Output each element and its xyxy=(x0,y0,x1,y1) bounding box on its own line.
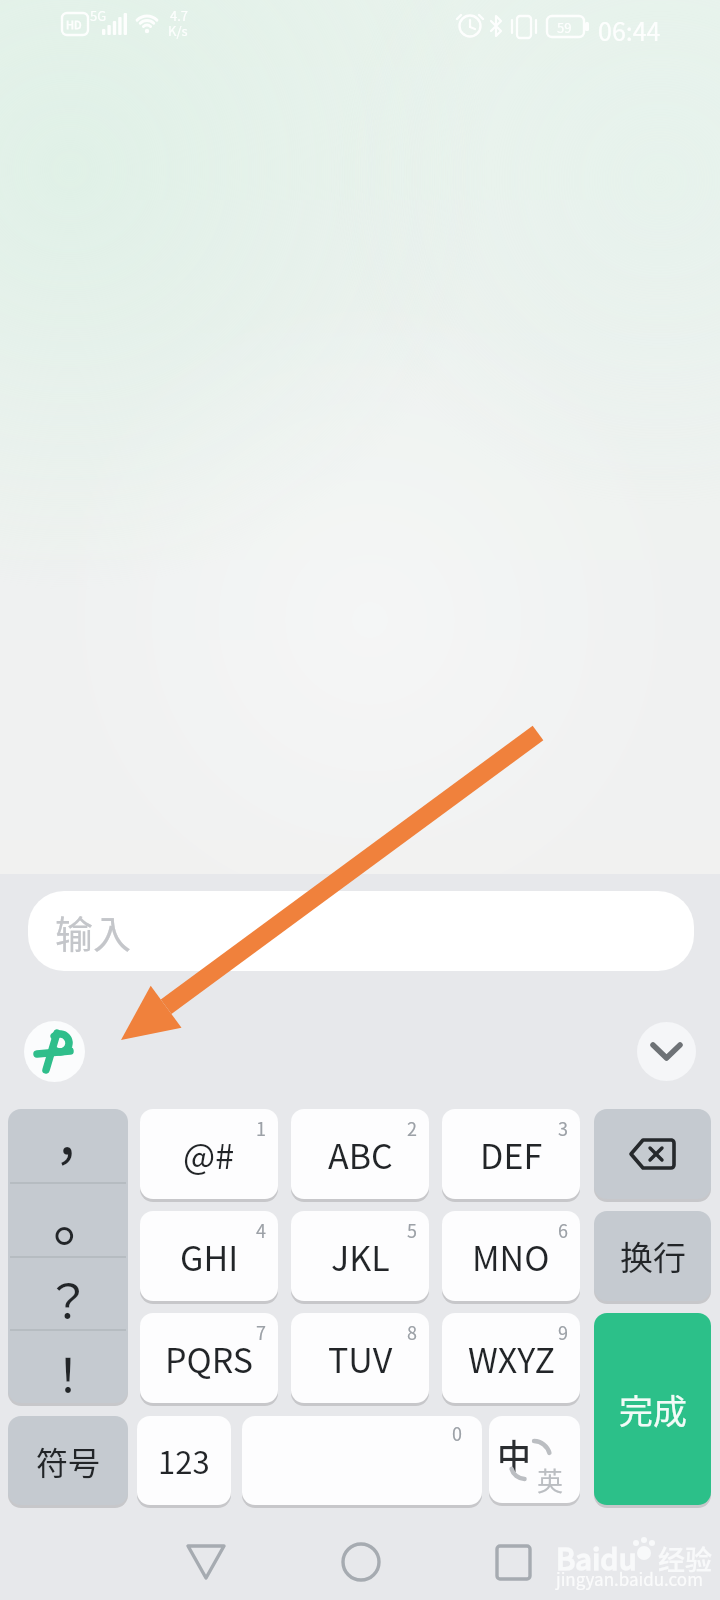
staticText: 123 xyxy=(158,1438,210,1483)
staticText: 英 xyxy=(537,1461,564,1499)
staticText: DEF xyxy=(480,1130,543,1179)
staticText: 5 xyxy=(407,1217,417,1243)
staticText: 3 xyxy=(558,1115,568,1141)
staticText: 06:44 xyxy=(598,12,661,48)
staticText: 1 xyxy=(256,1115,266,1141)
staticText: 4.7 xyxy=(170,6,189,25)
staticText: 8 xyxy=(407,1319,417,1345)
staticText: ？ xyxy=(45,1265,91,1332)
staticText: 换行 xyxy=(620,1232,686,1280)
staticText: JKL xyxy=(331,1232,390,1281)
staticText: GHI xyxy=(180,1232,239,1281)
staticText: ， xyxy=(54,1097,108,1171)
staticText: 4 xyxy=(256,1217,266,1243)
staticText: jingyan.baidu.com xyxy=(556,1566,703,1591)
staticText: WXYZ xyxy=(468,1334,555,1383)
staticText: 2 xyxy=(407,1115,417,1141)
staticText: 9 xyxy=(558,1319,568,1345)
staticText: K/s xyxy=(168,21,188,40)
staticText: 6 xyxy=(558,1217,568,1243)
staticText: TUV xyxy=(328,1334,393,1383)
staticText: ABC xyxy=(328,1130,393,1179)
staticText: MNO xyxy=(472,1232,550,1281)
staticText: 。 xyxy=(53,1174,112,1248)
staticText: 59 xyxy=(557,18,572,37)
staticText: 7 xyxy=(256,1319,266,1345)
staticText: ！ xyxy=(45,1339,91,1406)
staticText: HD xyxy=(66,16,82,32)
staticText: @# xyxy=(183,1130,235,1179)
staticText: 输入 xyxy=(55,904,132,959)
staticText: 5G xyxy=(90,6,107,25)
staticText: 完成 xyxy=(619,1385,687,1434)
staticText: 经验 xyxy=(658,1539,712,1578)
staticText: PQRS xyxy=(165,1334,254,1383)
staticText: 中 xyxy=(497,1430,531,1479)
staticText: 符号 xyxy=(36,1438,101,1484)
staticText: Baidu xyxy=(556,1536,637,1578)
staticText: 0 xyxy=(452,1420,462,1446)
